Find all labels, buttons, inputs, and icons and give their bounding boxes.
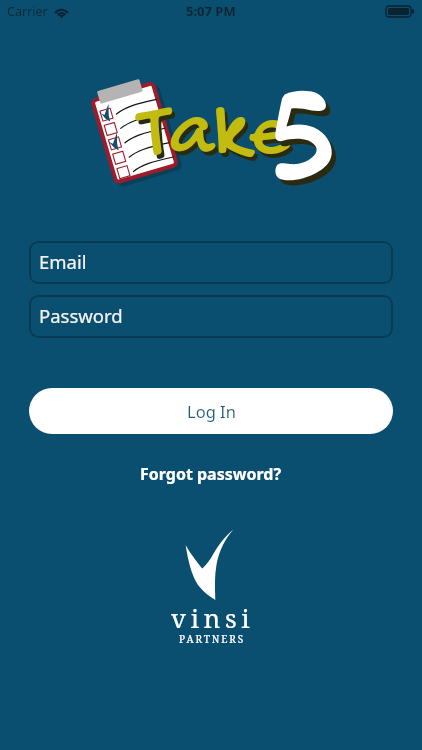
staticText: Carrier: [7, 3, 48, 20]
staticText: vinsi: [171, 600, 255, 635]
staticText: Email: [39, 249, 87, 274]
staticText: Take: [142, 94, 293, 187]
button[interactable]: Forgot password?: [29, 463, 393, 485]
staticText: PARTNERS: [179, 632, 246, 646]
staticText: Log In: [187, 400, 236, 422]
staticText: Forgot password?: [140, 463, 282, 485]
staticText: 5:07 PM: [186, 2, 236, 20]
button[interactable]: Email: [29, 241, 393, 284]
button[interactable]: Password: [29, 295, 393, 338]
button[interactable]: Log In: [29, 388, 393, 434]
staticText: Password: [39, 303, 123, 328]
staticText: Take: [139, 90, 290, 183]
